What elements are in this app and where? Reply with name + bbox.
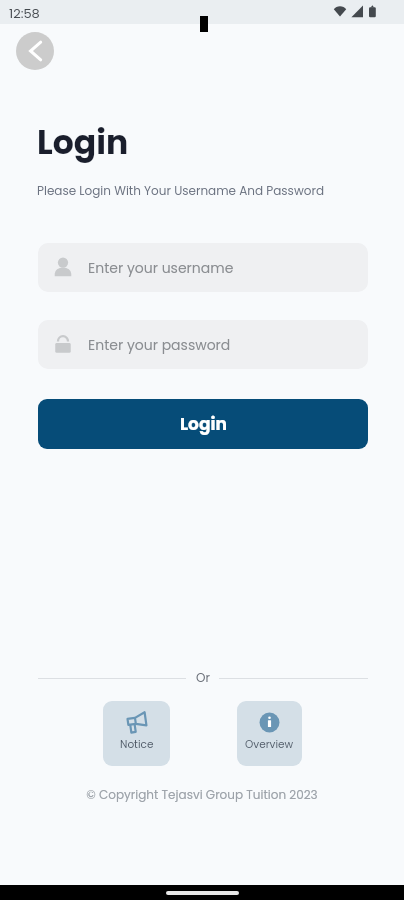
- button[interactable]: Back: [16, 32, 54, 70]
- button[interactable]: Enter your password: [38, 320, 368, 369]
- staticText: Notice: [120, 737, 154, 752]
- staticText: 12:58: [9, 4, 40, 22]
- staticText: © Copyright Tejasvi Group Tuition 2023: [86, 786, 318, 803]
- staticText: Login: [37, 119, 129, 165]
- staticText: Or: [196, 669, 210, 686]
- button[interactable]: Notice: [103, 701, 170, 766]
- button[interactable]: Login: [38, 399, 368, 449]
- staticText: Enter your username: [88, 258, 234, 278]
- button[interactable]: Enter your username: [38, 243, 368, 292]
- button[interactable]: Overview: [237, 701, 302, 766]
- staticText: Overview: [245, 737, 294, 752]
- staticText: Enter your password: [88, 335, 231, 355]
- staticText: Please Login With Your Username And Pass…: [37, 182, 324, 199]
- staticText: Login: [180, 412, 227, 436]
